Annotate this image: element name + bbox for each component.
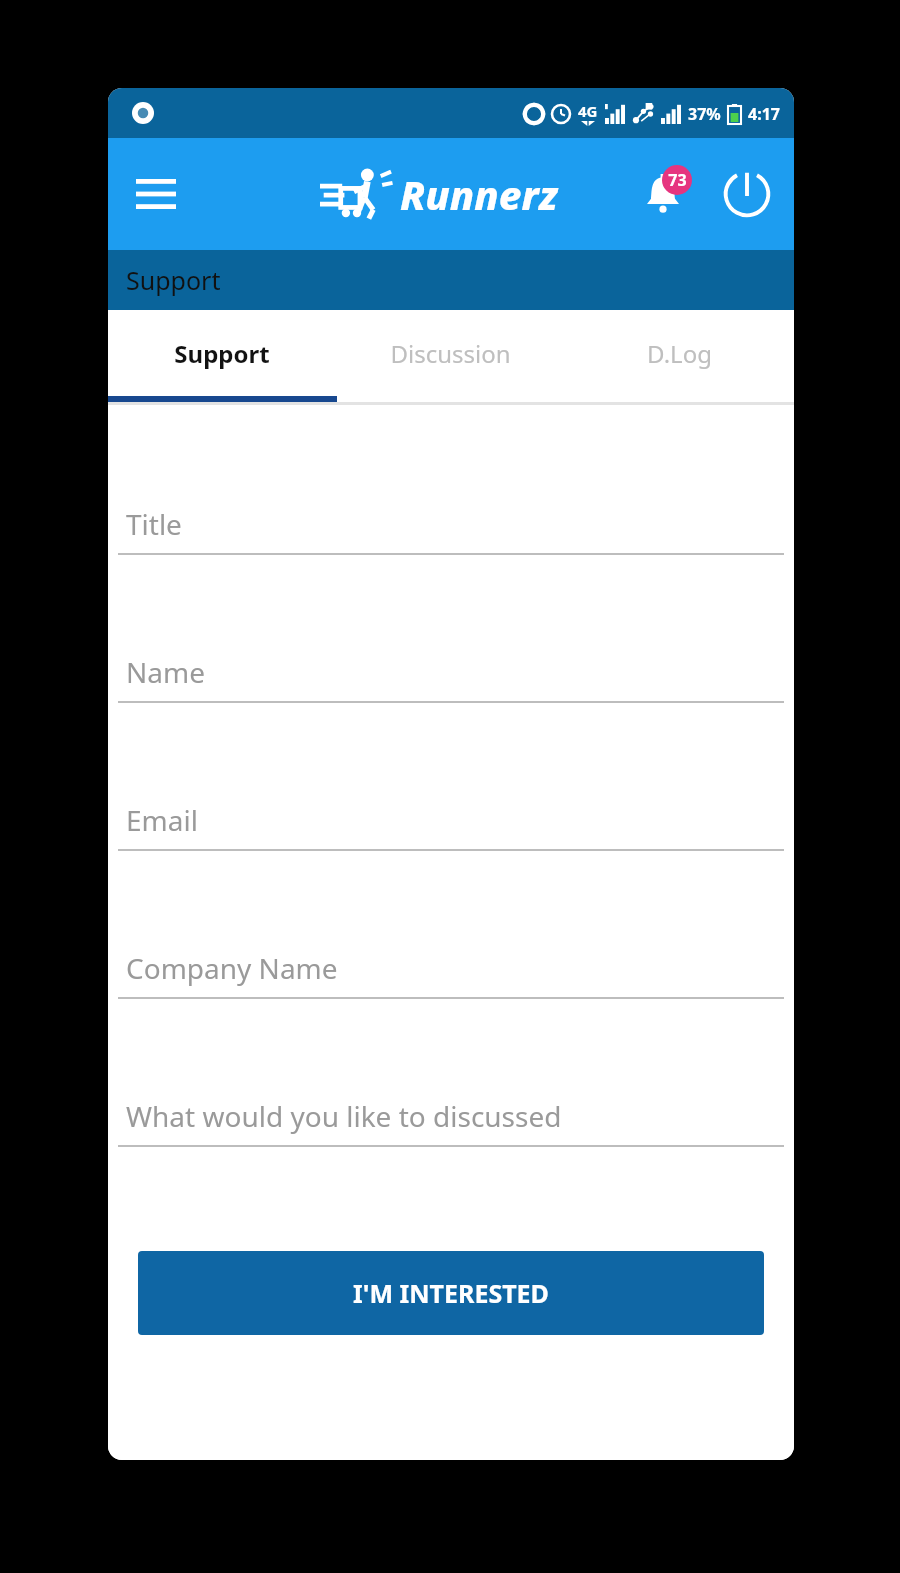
button[interactable]: Open navigation menu: [128, 166, 184, 222]
staticText: I'M INTERESTED: [353, 1276, 549, 1310]
staticText: Title: [126, 505, 182, 543]
staticText: What would you like to discussed: [126, 1097, 562, 1135]
staticText: 4G: [578, 101, 598, 121]
staticText: Company Name: [126, 949, 338, 987]
staticText: D.Log: [647, 337, 712, 370]
staticText: Support: [174, 337, 270, 370]
button[interactable]: Discussion: [336, 310, 565, 396]
staticText: 73: [668, 169, 687, 191]
button[interactable]: Company Name: [118, 899, 784, 1047]
button[interactable]: I'M INTERESTED: [138, 1251, 764, 1335]
staticText: 37%: [688, 103, 721, 125]
button[interactable]: Support: [108, 250, 794, 310]
staticText: Name: [126, 653, 205, 691]
button[interactable]: Notifications, 73 unread: [632, 163, 694, 225]
staticText: 4:17: [748, 103, 780, 125]
staticText: Runnerz: [400, 167, 558, 221]
staticText: Email: [126, 801, 198, 839]
button[interactable]: Email: [118, 751, 784, 899]
button[interactable]: Name: [118, 603, 784, 751]
button[interactable]: Support: [108, 310, 336, 396]
button[interactable]: What would you like to discussed: [118, 1047, 784, 1195]
staticText: Support: [126, 263, 221, 297]
staticText: Discussion: [390, 337, 511, 370]
button[interactable]: Title: [118, 455, 784, 603]
button[interactable]: Log out: [716, 163, 778, 225]
button[interactable]: D.Log: [565, 310, 794, 396]
